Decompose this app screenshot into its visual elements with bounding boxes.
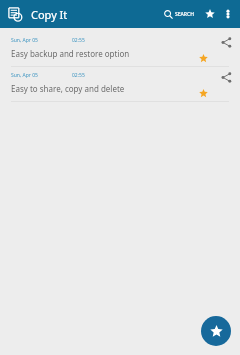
button[interactable]: Favorite <box>197 52 209 64</box>
button[interactable]: Favorites <box>202 6 218 22</box>
staticText: 02:55 <box>72 37 85 44</box>
staticText: Sun, Apr 05 <box>11 72 38 79</box>
staticText: Easy backup and restore option <box>11 48 130 59</box>
button[interactable]: Share <box>218 69 234 85</box>
button[interactable]: App icon <box>5 4 25 24</box>
button[interactable]: Add favorite <box>201 316 231 346</box>
staticText: Sun, Apr 05 <box>11 37 38 44</box>
staticText: SEARCH <box>175 11 194 18</box>
button[interactable]: SEARCH <box>162 6 196 23</box>
button[interactable]: More options <box>221 7 235 21</box>
button[interactable]: Sun, Apr 05 <box>0 32 240 66</box>
button[interactable]: Sun, Apr 05 <box>0 67 240 101</box>
staticText: Easy to share, copy and delete <box>11 83 125 94</box>
staticText: Copy It <box>31 7 68 22</box>
button[interactable]: Favorite <box>197 87 209 99</box>
button[interactable]: Share <box>218 34 234 50</box>
staticText: 02:55 <box>72 72 85 79</box>
